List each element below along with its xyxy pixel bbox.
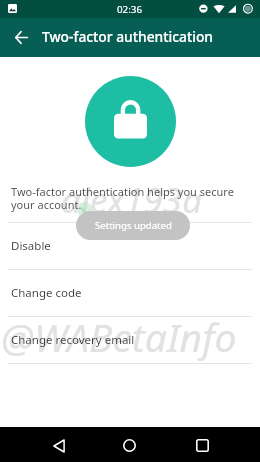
staticText: Disable bbox=[11, 238, 51, 254]
button[interactable]: Recent apps bbox=[185, 427, 220, 462]
staticText: alex193a bbox=[61, 176, 203, 224]
button[interactable]: Back bbox=[2, 18, 41, 57]
button[interactable]: Home bbox=[112, 427, 147, 462]
staticText: Change code bbox=[11, 285, 82, 301]
button[interactable]: Disable bbox=[0, 223, 260, 269]
button[interactable]: Change recovery email bbox=[0, 317, 260, 363]
staticText: Settings updated bbox=[95, 219, 172, 232]
staticText: 02:36 bbox=[117, 3, 143, 16]
staticText: Two-factor authentication helps you secu… bbox=[11, 184, 249, 212]
staticText: Two-factor authentication bbox=[42, 27, 214, 46]
staticText: Change recovery email bbox=[11, 332, 135, 348]
button[interactable]: Change code bbox=[0, 270, 260, 316]
button[interactable]: Back bbox=[41, 427, 76, 462]
staticText: @WABetaInfo bbox=[1, 310, 237, 363]
